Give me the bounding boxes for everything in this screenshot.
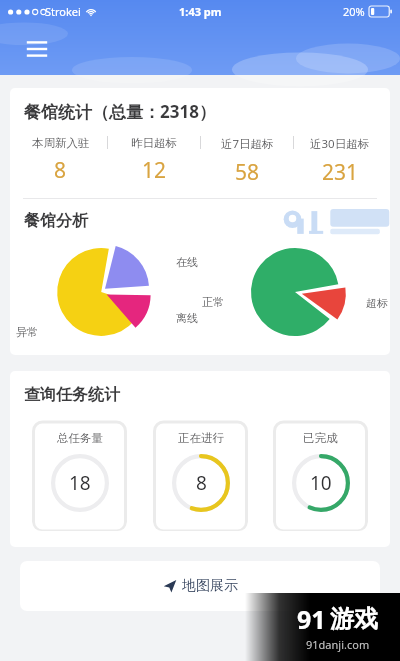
button[interactable]: Menu — [22, 34, 52, 64]
button[interactable]: 本周新入驻 — [14, 136, 107, 185]
staticText: 餐馆分析 — [24, 211, 88, 231]
staticText: 8 — [54, 156, 67, 185]
staticText: 餐馆统计（总量：2318） — [24, 100, 216, 123]
button[interactable]: 近7日超标 — [201, 136, 293, 187]
staticText: 超标 — [366, 296, 388, 310]
staticText: 18 — [69, 470, 91, 496]
staticText: 91 — [297, 602, 326, 636]
staticText: 正常 — [202, 295, 224, 309]
staticText: 58 — [235, 158, 260, 187]
staticText: 近7日超标 — [221, 136, 274, 152]
staticText: 地图展示 — [182, 577, 238, 595]
staticText: 本周新入驻 — [32, 136, 90, 150]
staticText: 总任务量 — [57, 431, 103, 445]
staticText: 231 — [322, 158, 359, 187]
button[interactable]: 地图展示 — [20, 561, 380, 611]
button[interactable]: 昨日超标 — [108, 136, 200, 185]
button[interactable]: 总任务量 — [32, 419, 127, 531]
staticText: 8 — [196, 470, 207, 496]
staticText: 近30日超标 — [310, 136, 370, 152]
staticText: 20% — [343, 4, 365, 19]
staticText: 1:43 pm — [179, 4, 222, 19]
staticText: 10 — [310, 470, 332, 496]
staticText: 查询任务统计 — [24, 385, 120, 405]
button[interactable]: 正在进行 — [153, 419, 248, 531]
staticText: 已完成 — [303, 431, 338, 445]
staticText: 91danji.com — [306, 637, 370, 652]
staticText: 在线 — [176, 255, 198, 269]
staticText: 游戏 — [330, 604, 378, 634]
button[interactable]: 已完成 — [273, 419, 368, 531]
staticText: 异常 — [16, 325, 38, 339]
staticText: 昨日超标 — [131, 136, 177, 150]
staticText: 正在进行 — [178, 431, 224, 445]
button[interactable]: 近30日超标 — [294, 136, 386, 187]
staticText: Strokei — [45, 4, 81, 19]
staticText: 12 — [142, 156, 167, 185]
staticText: 离线 — [176, 311, 198, 325]
